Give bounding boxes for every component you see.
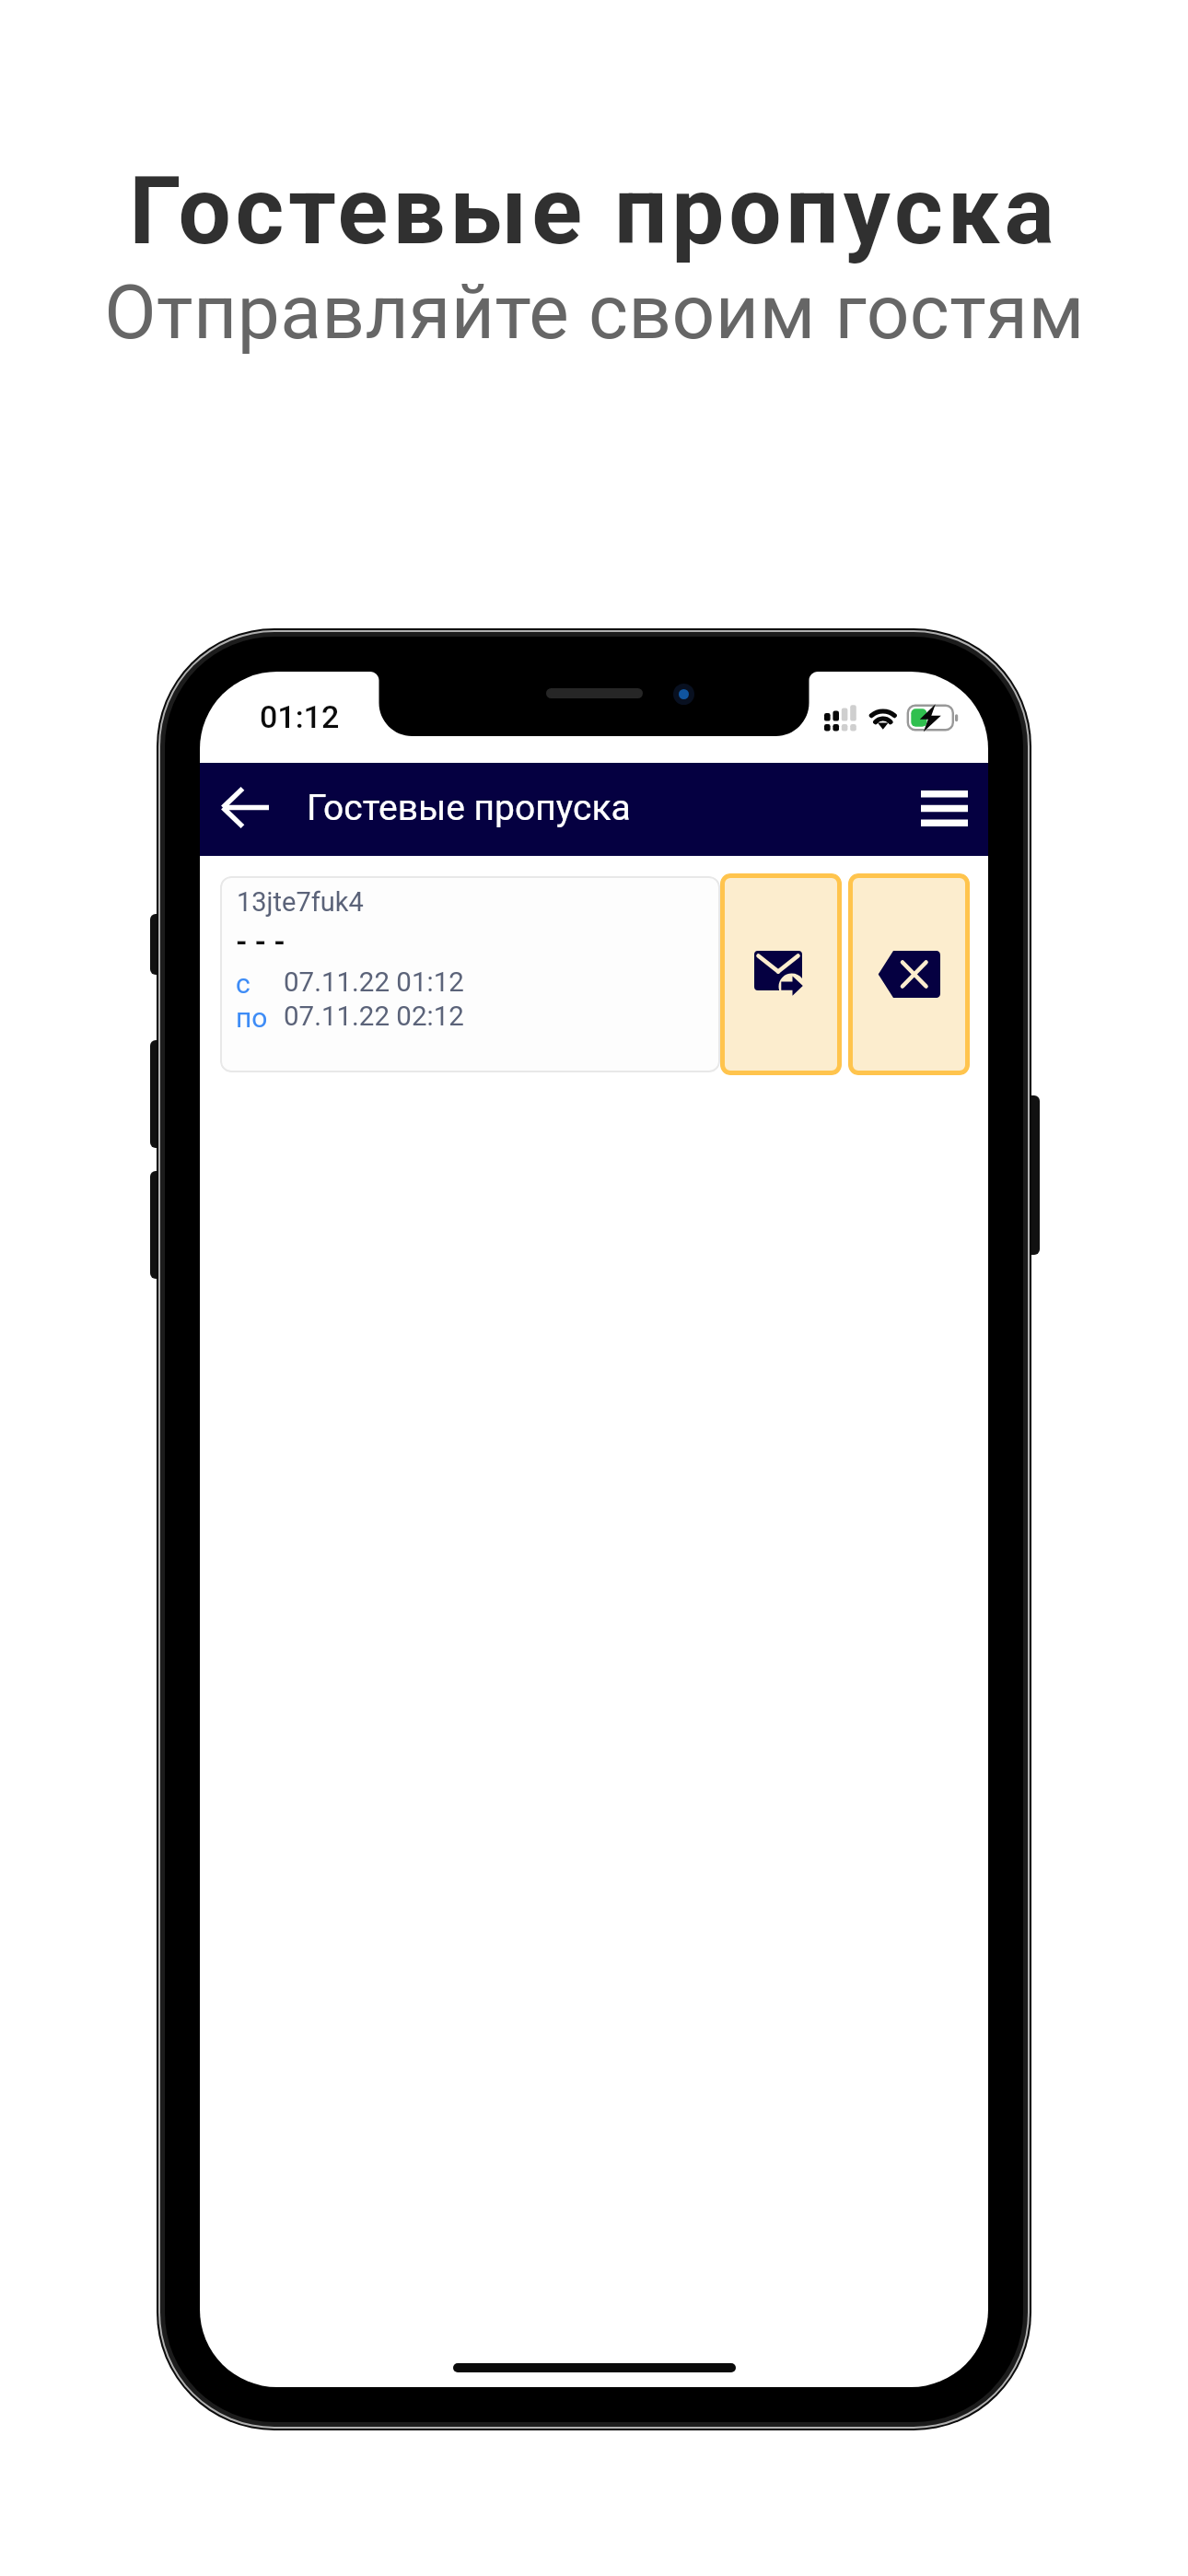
button[interactable]: 13jte7fuk4 bbox=[220, 876, 720, 1072]
button[interactable]: Send email bbox=[720, 873, 842, 1075]
staticText: Гостевые пропуска bbox=[129, 157, 1059, 266]
button[interactable]: Delete pass bbox=[848, 873, 970, 1075]
staticText: 13jte7fuk4 bbox=[237, 886, 364, 918]
button[interactable]: Menu bbox=[898, 762, 988, 855]
staticText: по bbox=[236, 1001, 268, 1034]
staticText: Гостевые пропуска bbox=[307, 787, 631, 829]
button[interactable]: Back bbox=[204, 761, 286, 854]
staticText: 07.11.22 02:12 bbox=[284, 1001, 464, 1033]
staticText: - - - bbox=[236, 924, 285, 959]
staticText: 07.11.22 01:12 bbox=[284, 966, 464, 999]
staticText: 01:12 bbox=[260, 698, 340, 735]
staticText: Отправляйте своим гостям bbox=[104, 268, 1085, 357]
staticText: с bbox=[236, 967, 250, 1000]
